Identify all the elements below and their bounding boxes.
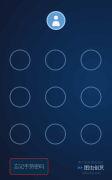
button[interactable]: 忘记手势密码 — [10, 158, 48, 174]
staticText: 忘记手势密码 — [14, 163, 44, 170]
staticText: 图虫创意 — [84, 164, 104, 171]
staticText: tuchong.com — [82, 171, 100, 175]
staticText: 图片来源:图虫创意 — [78, 160, 103, 164]
